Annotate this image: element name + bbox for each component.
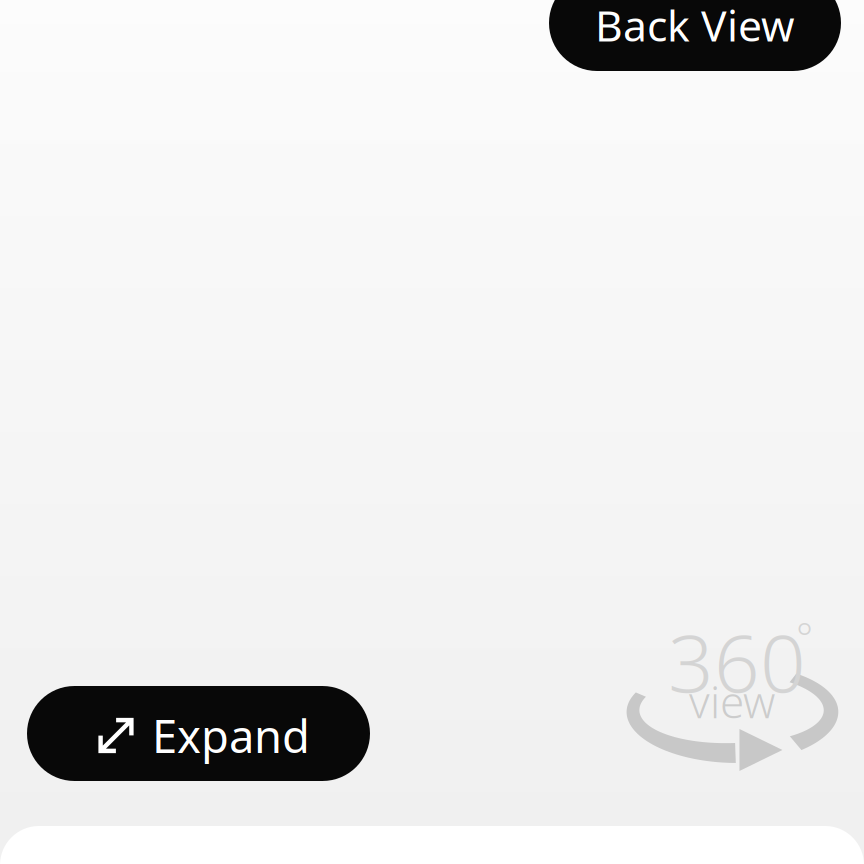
staticText: 360: [668, 608, 806, 714]
button[interactable]: Expand: [27, 686, 370, 781]
staticText: view: [689, 672, 775, 730]
staticText: Back View: [595, 0, 795, 53]
button[interactable]: Back View: [549, 0, 841, 71]
staticText: °: [796, 610, 813, 663]
staticText: Expand: [152, 705, 310, 766]
